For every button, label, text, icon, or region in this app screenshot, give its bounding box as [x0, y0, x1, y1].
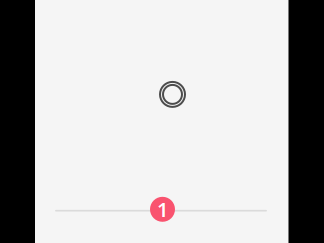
button[interactable]: Record [155, 77, 189, 111]
button[interactable]: Page 1 [150, 197, 175, 222]
staticText: 1 [157, 196, 168, 223]
